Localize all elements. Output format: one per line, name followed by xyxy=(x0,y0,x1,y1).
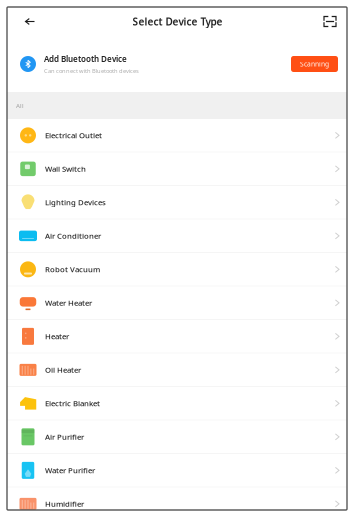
staticText: Air Purifier xyxy=(45,432,84,442)
button[interactable]: Oil Heater xyxy=(7,353,347,387)
staticText: Wall Switch xyxy=(45,164,86,174)
staticText: Air Conditioner xyxy=(45,231,101,241)
staticText: Heater xyxy=(45,331,69,342)
staticText: Electrical Outlet xyxy=(45,130,102,141)
staticText: Oil Heater xyxy=(45,365,81,375)
staticText: All xyxy=(16,101,24,110)
staticText: Humidifier xyxy=(45,499,84,509)
staticText: Can connect with Bluetooth devices xyxy=(44,67,139,75)
staticText: Select Device Type xyxy=(132,15,222,28)
button[interactable]: Scan QR code xyxy=(302,7,347,36)
button[interactable]: Electric Blanket xyxy=(7,387,347,420)
button[interactable]: Add Bluetooth Device xyxy=(7,36,347,92)
button[interactable]: Water Purifier xyxy=(7,454,347,487)
button[interactable]: Lighting Devices xyxy=(7,186,347,219)
staticText: Water Purifier xyxy=(45,465,95,476)
staticText: Add Bluetooth Device xyxy=(44,53,127,64)
button[interactable]: Air Purifier xyxy=(7,420,347,454)
button[interactable]: Humidifier xyxy=(7,487,347,521)
button[interactable]: Water Heater xyxy=(7,286,347,320)
button[interactable]: Air Conditioner xyxy=(7,219,347,253)
staticText: Lighting Devices xyxy=(45,197,106,208)
staticText: Scanning xyxy=(300,59,329,69)
staticText: Electric Blanket xyxy=(45,398,100,409)
button[interactable]: Wall Switch xyxy=(7,152,347,186)
button[interactable]: Heater xyxy=(7,320,347,353)
staticText: Robot Vacuum xyxy=(45,264,100,275)
button[interactable]: Back xyxy=(7,7,53,36)
staticText: Water Heater xyxy=(45,298,92,308)
button[interactable]: Robot Vacuum xyxy=(7,253,347,286)
button[interactable]: Electrical Outlet xyxy=(7,119,347,152)
